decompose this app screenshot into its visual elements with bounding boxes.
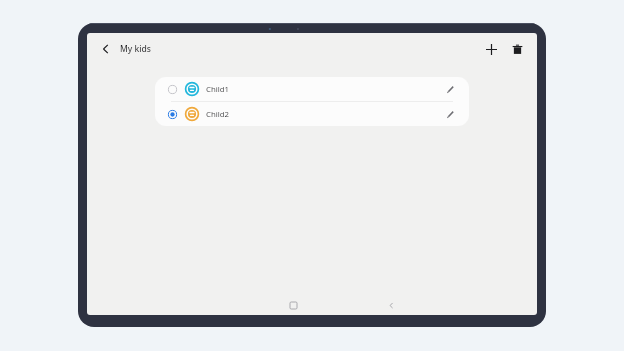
- button[interactable]: Select Child1: [155, 77, 469, 101]
- button[interactable]: Select Child2: [155, 102, 469, 126]
- button[interactable]: Back: [383, 297, 399, 313]
- button[interactable]: Recents: [285, 297, 301, 313]
- button[interactable]: Edit Child2: [442, 106, 458, 122]
- button[interactable]: Back: [97, 40, 151, 58]
- other: Back: [97, 40, 115, 58]
- button[interactable]: Select Child2: [166, 108, 179, 121]
- button[interactable]: Delete: [507, 39, 527, 59]
- button[interactable]: Select Child1: [166, 83, 179, 96]
- button[interactable]: Edit Child1: [442, 81, 458, 97]
- button[interactable]: Add child: [481, 39, 501, 59]
- staticText: My kids: [120, 43, 151, 55]
- staticText: Child2: [206, 109, 230, 120]
- staticText: Child1: [206, 84, 230, 95]
